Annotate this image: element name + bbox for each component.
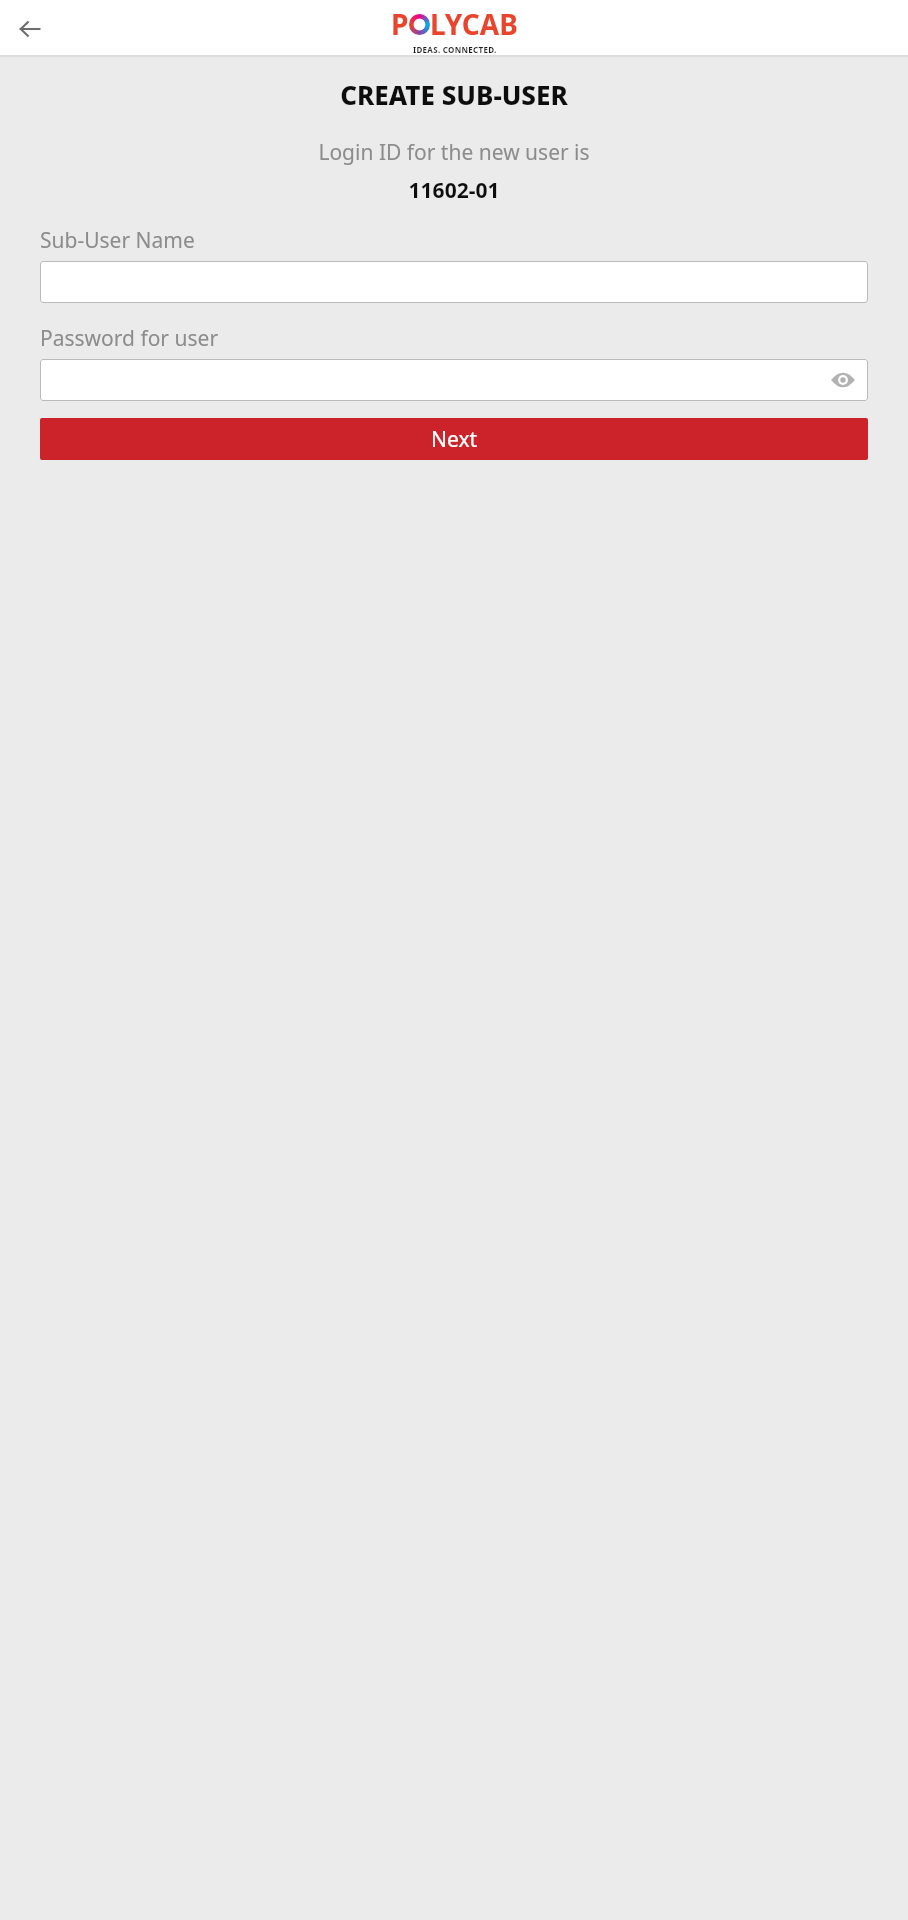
button[interactable]: Next: [40, 418, 868, 460]
button[interactable]: Back: [8, 7, 52, 51]
button[interactable]: [40, 261, 868, 303]
staticText: Next: [431, 425, 478, 454]
button[interactable]: Show password: [40, 359, 868, 401]
staticText: Login ID for the new user is: [0, 138, 908, 167]
button[interactable]: Show password: [828, 365, 858, 395]
staticText: IDEAS. CONNECTED.: [413, 44, 497, 55]
staticText: Sub-User Name: [40, 226, 195, 255]
staticText: CREATE SUB-USER: [0, 77, 908, 112]
staticText: LYCAB: [430, 5, 518, 43]
staticText: 11602-01: [0, 176, 908, 205]
staticText: P: [391, 5, 409, 43]
staticText: Password for user: [40, 324, 219, 353]
